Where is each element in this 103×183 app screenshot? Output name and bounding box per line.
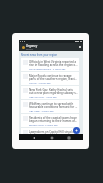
button[interactable]: Lawmakers on Capitol Hill struck a deal … [21,128,79,134]
staticText: Wildfires continue to spread with favour… [29,102,78,109]
staticText: Region [26,48,34,51]
button[interactable]: Home [49,135,54,140]
button[interactable]: Residents of the coastal towns have begu… [21,114,79,127]
staticText: Lawmakers on Capitol Hill struck a deal … [29,130,78,134]
button[interactable]: Recent news from your region [21,53,58,56]
staticText: WSAZ NewsChannel 3 · 4 hours ago [29,68,66,71]
button[interactable]: Major floods continue to ravage parts of… [21,72,79,85]
button[interactable]: Officials in West Virginia reported a ri… [21,58,79,71]
staticText: Officials in West Virginia reported a ri… [29,60,78,67]
button[interactable]: Recents [66,135,71,140]
button[interactable]: New York Gov. Kathy Hochul sets out a ne… [21,86,79,99]
staticText: New York Gov. Kathy Hochul sets out a ne… [29,88,78,95]
staticText: NBC News · 3 hours ago [29,110,54,113]
staticText: Residents of the coastal towns have begu… [29,116,78,123]
staticText: Major floods continue to ravage parts of… [29,74,78,81]
staticText: Reuters World · 5 hours ago [29,124,58,127]
staticText: New York Post · 1 hour ago [29,96,57,99]
button[interactable]: Compose [73,127,80,134]
button[interactable]: Back [31,135,36,140]
staticText: The Hill · 2 hours ago [29,82,51,85]
staticText: Urgency [26,44,38,48]
button[interactable]: Wildfires continue to spread with favour… [21,100,79,113]
